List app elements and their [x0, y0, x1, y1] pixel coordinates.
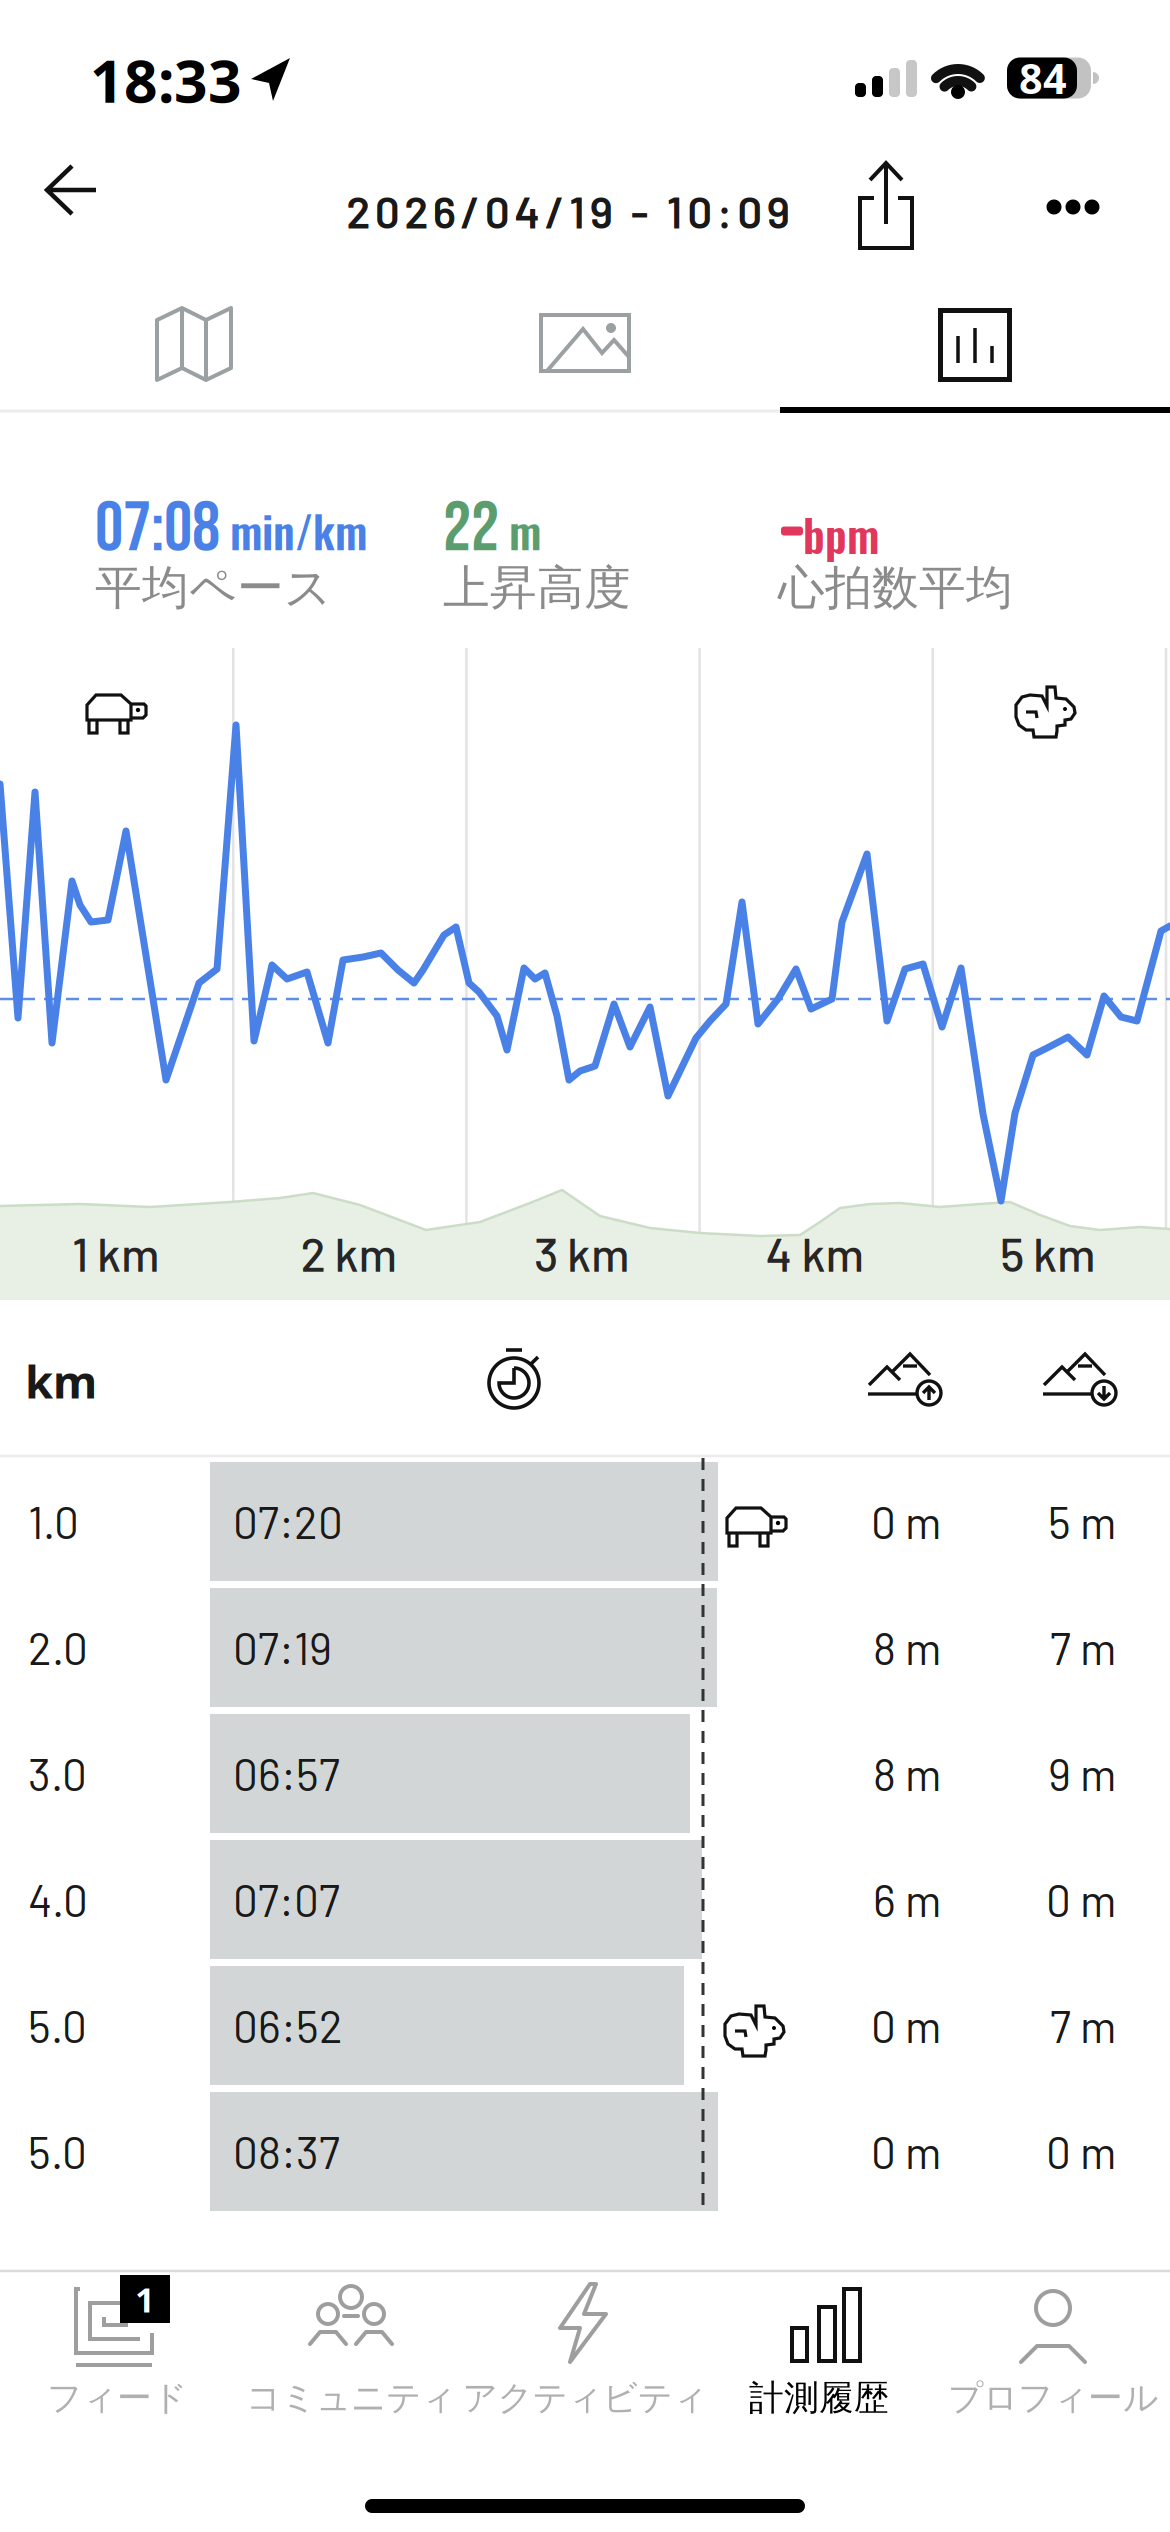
staticText: 0 m — [1046, 2125, 1116, 2178]
staticText: bpm — [803, 501, 879, 567]
staticText: フィード — [47, 2377, 187, 2419]
staticText: 6 m — [873, 1873, 941, 1926]
button[interactable]: More — [1046, 199, 1100, 215]
button[interactable]: Map — [155, 306, 235, 386]
staticText: 2.0 — [28, 1621, 88, 1674]
staticText: 5.0 — [28, 1999, 87, 2052]
staticText: 3.0 — [28, 1747, 87, 1800]
staticText: km — [25, 1351, 97, 1411]
staticText: min/km — [230, 498, 367, 563]
staticText: 06:52 — [233, 1999, 343, 2052]
staticText: 07:07 — [233, 1873, 340, 1926]
staticText: m — [509, 498, 541, 563]
staticText: 07:19 — [233, 1621, 332, 1674]
staticText: 84 — [1019, 51, 1067, 105]
staticText: 07:20 — [233, 1495, 343, 1548]
staticText: コミュニティ — [246, 2377, 456, 2419]
staticText: 0 m — [871, 2125, 941, 2178]
staticText: 8 m — [873, 1747, 941, 1800]
staticText: 4.0 — [28, 1873, 88, 1926]
button[interactable]: コミュニティ — [235, 2278, 467, 2428]
staticText: 1 — [135, 2276, 155, 2322]
staticText: 計測履歴 — [749, 2377, 889, 2419]
staticText: 0 m — [871, 1495, 941, 1548]
staticText: 07:08 — [95, 487, 220, 571]
button[interactable]: プロフィール — [937, 2278, 1169, 2428]
button[interactable]: Share — [856, 158, 916, 250]
staticText: 5.0 — [28, 2125, 87, 2178]
staticText: 1.0 — [28, 1495, 79, 1548]
staticText: 5 km — [1000, 1225, 1096, 1281]
staticText: 平均ペース — [95, 559, 332, 617]
staticText: 7 m — [1050, 1999, 1116, 2052]
staticText: 心拍数平均 — [778, 559, 1013, 617]
staticText: 4 km — [765, 1225, 864, 1281]
staticText: 5 m — [1048, 1495, 1116, 1548]
staticText: 08:37 — [233, 2125, 340, 2178]
staticText: 22 — [443, 487, 499, 571]
button[interactable]: Charts — [938, 308, 1012, 382]
staticText: 0 m — [1046, 1873, 1116, 1926]
staticText: 2026/04/19 - 10:09 — [346, 185, 790, 237]
staticText: 8 m — [873, 1621, 941, 1674]
button[interactable]: Back — [46, 165, 98, 217]
button[interactable]: 計測履歴 — [703, 2278, 935, 2428]
button[interactable]: 1 — [1, 2278, 233, 2428]
staticText: 9 m — [1048, 1747, 1116, 1800]
staticText: 18:33 — [90, 41, 242, 119]
staticText: 1 km — [72, 1225, 160, 1281]
staticText: 2 km — [300, 1225, 397, 1281]
staticText: 0 m — [871, 1999, 941, 2052]
staticText: 06:57 — [233, 1747, 340, 1800]
staticText: アクティビティ — [462, 2377, 707, 2419]
button[interactable]: アクティビティ — [469, 2278, 701, 2428]
staticText: 上昇高度 — [443, 559, 631, 617]
button[interactable]: Photos — [539, 313, 631, 375]
staticText: プロフィール — [948, 2377, 1158, 2419]
staticText: 7 m — [1050, 1621, 1116, 1674]
staticText: 3 km — [534, 1225, 630, 1281]
